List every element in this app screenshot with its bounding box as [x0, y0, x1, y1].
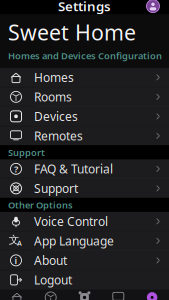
staticText: 文: [9, 233, 20, 246]
staticText: A: [17, 239, 21, 247]
button[interactable]: Home: [0, 290, 34, 300]
staticText: Support: [8, 146, 45, 159]
staticText: App Language: [34, 233, 114, 249]
button[interactable]: i: [0, 251, 169, 270]
button[interactable]: Remotes: [101, 290, 135, 300]
button[interactable]: Devices: [34, 290, 68, 300]
staticText: Devices: [34, 108, 78, 124]
button[interactable]: Scenes: [68, 290, 101, 300]
button[interactable]: Profile: [145, 0, 161, 14]
staticText: About: [34, 252, 67, 268]
button[interactable]: Remotes: [0, 126, 169, 145]
button[interactable]: Settings: [135, 290, 169, 300]
staticText: Homes and Devices Configuration: [8, 49, 162, 62]
button[interactable]: Support: [0, 179, 169, 198]
staticText: Voice Control: [34, 213, 108, 229]
staticText: Support: [34, 180, 78, 196]
button[interactable]: Homes: [0, 68, 169, 87]
staticText: ?: [14, 163, 18, 175]
button[interactable]: ?: [0, 159, 169, 178]
button[interactable]: 文: [0, 231, 169, 250]
staticText: Settings: [58, 0, 111, 15]
button[interactable]: Rooms: [0, 87, 169, 106]
button[interactable]: Logout: [0, 270, 169, 289]
button[interactable]: Devices: [0, 107, 169, 126]
staticText: Sweet Home: [8, 18, 136, 46]
button[interactable]: Voice Control: [0, 212, 169, 231]
staticText: FAQ & Tutorial: [34, 161, 113, 177]
staticText: Homes: [34, 69, 74, 85]
staticText: Remotes: [34, 128, 83, 144]
staticText: Logout: [34, 272, 72, 288]
staticText: i: [14, 254, 17, 267]
staticText: Other Options: [8, 199, 73, 211]
staticText: Rooms: [34, 89, 72, 105]
